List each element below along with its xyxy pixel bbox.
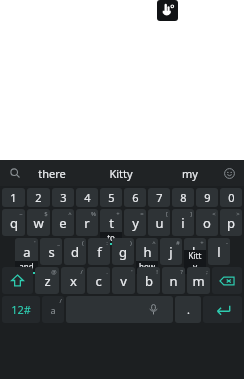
button[interactable]: m: [187, 267, 210, 294]
staticText: o: [203, 214, 211, 232]
button[interactable]: c: [87, 267, 110, 294]
button[interactable]: y: [124, 209, 146, 236]
staticText: 6: [132, 190, 139, 205]
button[interactable]: n: [162, 267, 185, 294]
staticText: n: [169, 272, 178, 290]
button[interactable]: my: [155, 160, 224, 186]
button[interactable]: 9: [196, 188, 218, 207]
staticText: ]: [190, 210, 192, 218]
staticText: d: [71, 243, 79, 261]
staticText: i: [181, 214, 185, 232]
button[interactable]: h: [136, 238, 158, 265]
staticText: 8: [180, 190, 187, 205]
staticText: a: [23, 243, 31, 261]
button[interactable]: v: [112, 267, 135, 294]
staticText: +: [116, 210, 120, 218]
button[interactable]: Enter: [203, 296, 242, 323]
button[interactable]: 2: [27, 188, 50, 207]
button[interactable]: g: [112, 238, 134, 265]
button[interactable]: 4: [76, 188, 98, 207]
staticText: how: [139, 261, 155, 272]
button[interactable]: .: [175, 296, 201, 323]
button[interactable]: there: [18, 160, 86, 186]
button[interactable]: a: [15, 238, 38, 265]
staticText: ': [131, 268, 133, 276]
button[interactable]: r: [76, 209, 98, 236]
button[interactable]: d: [64, 238, 86, 265]
button[interactable]: t: [100, 209, 122, 236]
button[interactable]: p: [220, 209, 242, 236]
button[interactable]: 0: [220, 188, 242, 207]
staticText: 3: [60, 190, 67, 205]
staticText: $: [44, 210, 48, 218]
staticText: m: [192, 272, 205, 290]
button[interactable]: o: [196, 209, 218, 236]
button[interactable]: i: [172, 209, 194, 236]
staticText: 12#: [11, 302, 31, 317]
button[interactable]: 5: [100, 188, 122, 207]
button[interactable]: x: [61, 267, 85, 294]
staticText: j: [169, 243, 173, 261]
button[interactable]: 6: [124, 188, 146, 207]
staticText: ^: [68, 210, 72, 218]
button[interactable]: 3: [52, 188, 74, 207]
staticText: %: [91, 210, 96, 218]
button[interactable]: l: [208, 238, 230, 265]
button[interactable]: w: [27, 209, 50, 236]
button[interactable]: u: [148, 209, 170, 236]
staticText: l: [217, 243, 221, 261]
button[interactable]: 1: [2, 188, 25, 207]
button[interactable]: z: [35, 267, 59, 294]
staticText: !: [156, 268, 158, 276]
button[interactable]: a: [42, 296, 64, 323]
staticText: [: [166, 210, 168, 218]
staticText: x: [70, 272, 77, 290]
button[interactable]: s: [40, 238, 62, 265]
staticText: w: [33, 214, 44, 232]
staticText: q: [10, 214, 18, 232]
staticText: ): [130, 239, 132, 247]
staticText: v: [120, 272, 127, 290]
staticText: =: [140, 210, 144, 218]
staticText: to: [107, 232, 115, 243]
button[interactable]: k: [184, 238, 206, 265]
button[interactable]: 8: [172, 188, 194, 207]
staticText: -: [226, 239, 228, 247]
staticText: /: [59, 297, 62, 305]
button[interactable]: 7: [148, 188, 170, 207]
button[interactable]: Gesture typing: [157, 0, 178, 21]
staticText: there: [38, 166, 66, 181]
button[interactable]: 12#: [2, 296, 40, 323]
button[interactable]: Shift: [2, 267, 33, 294]
button[interactable]: Voice input: [66, 296, 173, 323]
staticText: 9: [204, 190, 211, 205]
staticText: ': [34, 239, 36, 247]
other: Shift: [2, 267, 33, 294]
button[interactable]: b: [137, 267, 160, 294]
button[interactable]: f: [88, 238, 110, 265]
button[interactable]: Kitty: [86, 160, 155, 186]
button[interactable]: Emoji: [218, 162, 240, 184]
staticText: Kitty: [109, 166, 133, 181]
staticText: 0: [228, 190, 235, 205]
staticText: g: [119, 243, 127, 261]
staticText: 7: [156, 190, 163, 205]
staticText: h: [143, 243, 152, 261]
button[interactable]: j: [160, 238, 182, 265]
staticText: r: [84, 214, 90, 232]
button[interactable]: q: [2, 209, 25, 236]
staticText: ?: [180, 268, 183, 276]
staticText: c: [95, 272, 102, 290]
staticText: ~: [19, 210, 23, 218]
staticText: k: [192, 243, 199, 261]
staticText: and: [19, 261, 34, 272]
staticText: t: [109, 214, 114, 232]
button[interactable]: Search: [4, 162, 26, 184]
staticText: 1: [10, 190, 17, 205]
staticText: #: [176, 239, 180, 247]
staticText: (: [82, 239, 84, 247]
staticText: .: [106, 268, 108, 276]
button[interactable]: Backspace: [212, 267, 242, 294]
button[interactable]: e: [52, 209, 74, 236]
staticText: y: [132, 214, 139, 232]
